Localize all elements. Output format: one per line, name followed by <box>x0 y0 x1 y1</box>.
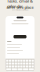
staticText: Everything in one fast app <box>11 9 28 11</box>
staticText: all in one place <box>6 4 33 10</box>
staticText: Tasks, email & calendar <box>7 0 33 9</box>
